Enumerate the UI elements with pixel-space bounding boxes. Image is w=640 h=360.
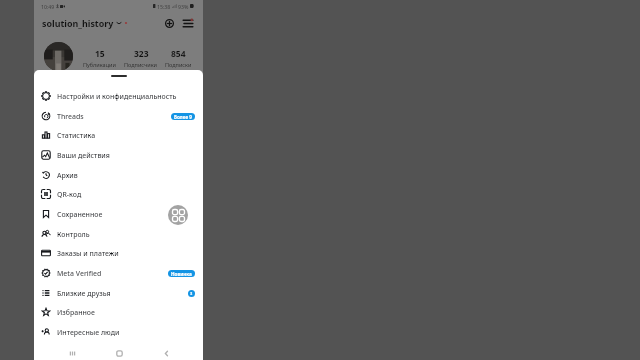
staticText: Подписки [165, 61, 192, 68]
staticText: Избранное [57, 308, 95, 317]
button[interactable]: Избранное [34, 302, 203, 322]
staticText: Архив [57, 171, 78, 180]
staticText: Ваши действия [57, 151, 110, 160]
button[interactable]: QR-код [34, 184, 203, 204]
staticText: 3 [190, 291, 193, 296]
staticText: Более 9 [174, 114, 192, 120]
staticText: Публикации [83, 61, 116, 68]
staticText: Сохраненное [57, 210, 103, 219]
button[interactable]: Статистика [34, 125, 203, 145]
staticText: solution_history [42, 17, 114, 29]
button[interactable]: Близкие друзья [34, 283, 203, 303]
staticText: Threads [57, 112, 84, 121]
staticText: Новинка [171, 271, 192, 277]
staticText: 15 [95, 48, 105, 60]
button[interactable]: Ваши действия [34, 145, 203, 165]
staticText: Настройки и конфиденциальность [57, 92, 177, 101]
button[interactable]: Back [159, 346, 173, 360]
button[interactable]: solution_history [42, 17, 128, 29]
button[interactable]: 15 [82, 48, 117, 68]
button[interactable]: Интересные люди [34, 322, 203, 342]
button[interactable]: Meta Verified [34, 263, 203, 283]
staticText: Интересные люди [57, 328, 120, 337]
button[interactable]: Recent apps [65, 346, 79, 360]
button[interactable]: 323 [123, 48, 159, 68]
staticText: 323 [134, 48, 149, 60]
button[interactable]: Настройки и конфиденциальность [34, 86, 203, 106]
staticText: 854 [171, 48, 186, 60]
staticText: Близкие друзья [57, 289, 111, 298]
staticText: Заказы и платежи [57, 249, 119, 258]
staticText: Статистика [57, 131, 96, 140]
staticText: Подписчики [124, 61, 158, 68]
staticText: 15:38 [157, 3, 171, 10]
button[interactable]: Контроль [34, 224, 203, 244]
button[interactable]: Menu [181, 16, 195, 30]
button[interactable]: 854 [164, 48, 193, 68]
button[interactable]: Сохраненное [34, 204, 203, 224]
button[interactable]: Заказы и платежи [34, 243, 203, 263]
staticText: 10:49 [41, 3, 55, 10]
button[interactable]: New post [162, 16, 176, 30]
button[interactable]: Home [112, 346, 126, 360]
staticText: QR-код [57, 190, 82, 199]
button[interactable]: Threads [34, 106, 203, 126]
staticText: Meta Verified [57, 269, 102, 278]
button[interactable]: Profile photo [44, 42, 73, 71]
button[interactable]: Архив [34, 165, 203, 185]
button[interactable]: Recent apps [168, 205, 188, 225]
staticText: Контроль [57, 230, 90, 239]
staticText: 93% [178, 3, 189, 10]
